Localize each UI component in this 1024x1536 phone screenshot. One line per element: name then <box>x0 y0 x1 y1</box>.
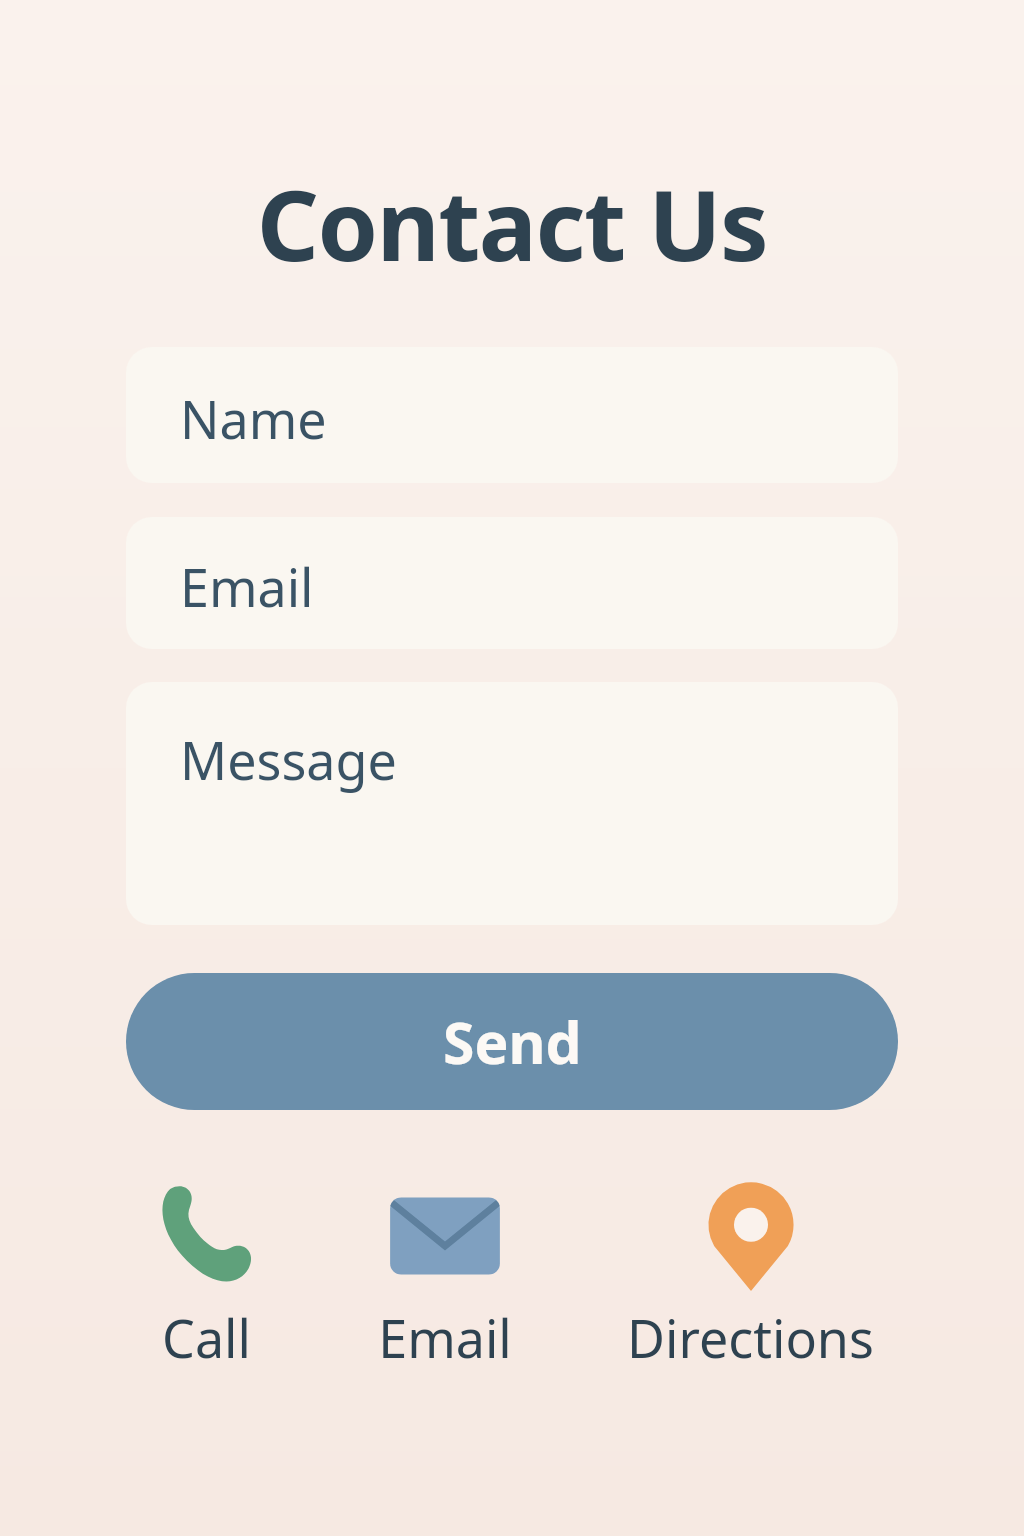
button[interactable]: Call <box>150 1180 262 1373</box>
staticText: Call <box>162 1302 251 1373</box>
button[interactable]: Message <box>126 682 898 925</box>
staticText: Email <box>378 1302 512 1373</box>
button[interactable]: Email <box>378 1180 512 1373</box>
staticText: Contact Us <box>0 157 1024 289</box>
staticText: Send <box>443 1003 582 1081</box>
button[interactable]: Send <box>126 973 898 1110</box>
staticText: Name <box>180 383 327 454</box>
button[interactable]: Email <box>126 517 898 649</box>
staticText: Message <box>180 724 397 795</box>
button[interactable]: Name <box>126 347 898 483</box>
staticText: Email <box>180 551 314 622</box>
button[interactable]: Directions <box>627 1180 874 1373</box>
staticText: Directions <box>627 1302 874 1373</box>
